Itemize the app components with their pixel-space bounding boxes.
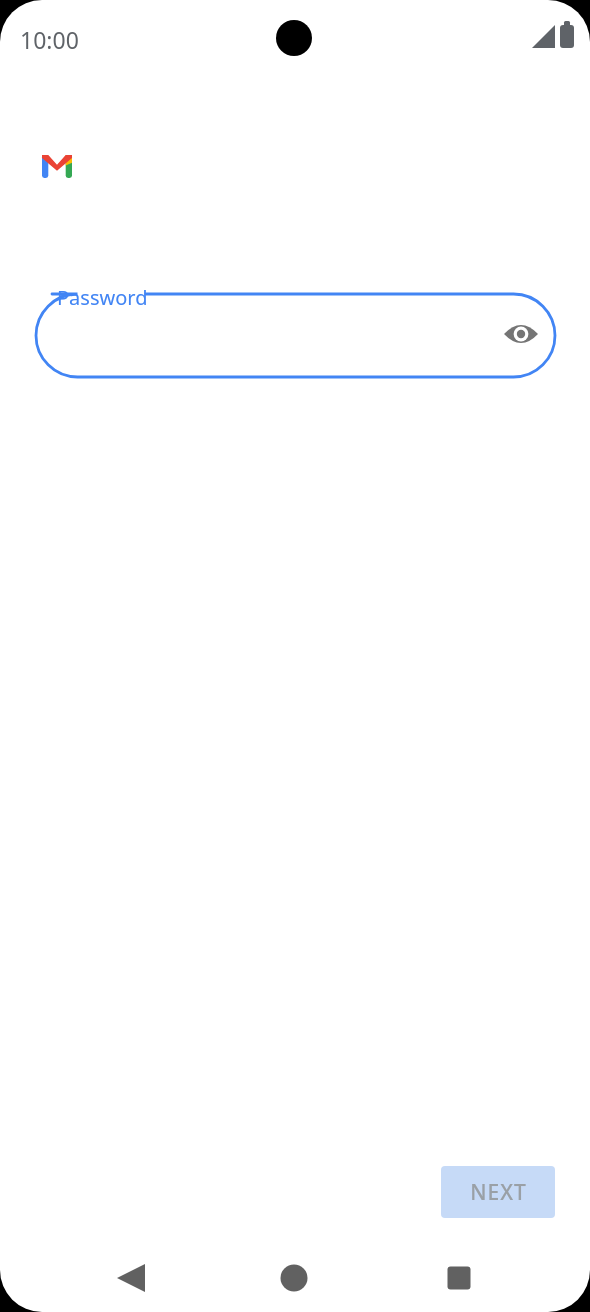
button[interactable]: Password xyxy=(36,294,555,377)
staticText: Password xyxy=(57,284,148,311)
staticText: 10:00 xyxy=(20,24,79,55)
button[interactable]: NEXT xyxy=(441,1166,555,1218)
button[interactable]: Home xyxy=(264,1248,324,1308)
button[interactable]: Recent apps xyxy=(429,1248,489,1308)
button[interactable]: Show password xyxy=(497,310,545,358)
button[interactable]: Back xyxy=(101,1248,161,1308)
staticText: NEXT xyxy=(470,1178,527,1207)
